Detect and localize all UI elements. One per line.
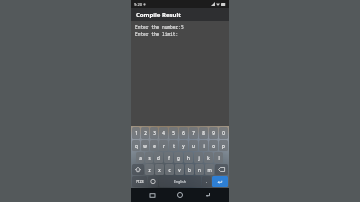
button[interactable]: z: [145, 164, 154, 175]
button[interactable]: k: [204, 152, 213, 163]
staticText: 6: [182, 130, 185, 136]
staticText: 8: [202, 130, 205, 136]
button[interactable]: b: [185, 164, 194, 175]
staticText: y: [182, 143, 185, 149]
button[interactable]: h: [184, 152, 193, 163]
staticText: h: [187, 155, 190, 161]
button[interactable]: 3: [150, 127, 158, 139]
button[interactable]: d: [154, 152, 163, 163]
staticText: x: [158, 167, 161, 173]
staticText: l: [218, 155, 220, 161]
staticText: j: [198, 155, 200, 161]
staticText: 9: [212, 130, 215, 136]
staticText: 7: [192, 130, 195, 136]
button[interactable]: w: [141, 140, 149, 151]
staticText: Compile Result: [136, 11, 181, 19]
staticText: f: [168, 155, 170, 161]
button[interactable]: 0: [219, 127, 228, 139]
staticText: t: [173, 143, 175, 149]
staticText: n: [198, 167, 201, 173]
staticText: b: [188, 167, 191, 173]
staticText: v: [178, 167, 181, 173]
button[interactable]: t: [169, 140, 178, 151]
staticText: Enter the number:5: [135, 24, 184, 30]
button[interactable]: 2: [141, 127, 149, 139]
staticText: m: [207, 167, 212, 173]
staticText: c: [168, 167, 171, 173]
button[interactable]: c: [165, 164, 174, 175]
staticText: u: [192, 143, 195, 149]
staticText: k: [207, 155, 210, 161]
button[interactable]: 1: [132, 127, 140, 139]
button[interactable]: Backspace: [215, 164, 228, 175]
button[interactable]: Emoji: [148, 176, 158, 187]
button[interactable]: 8: [199, 127, 208, 139]
staticText: 9:20: [134, 2, 142, 7]
button[interactable]: ?123: [132, 176, 147, 187]
button[interactable]: 4: [159, 127, 168, 139]
button[interactable]: n: [195, 164, 204, 175]
button[interactable]: 6: [179, 127, 188, 139]
staticText: g: [177, 155, 180, 161]
staticText: w: [143, 143, 147, 149]
staticText: 5: [172, 130, 175, 136]
staticText: 0: [222, 130, 225, 136]
staticText: i: [203, 143, 205, 149]
staticText: Enter the limit:: [135, 31, 179, 37]
staticText: 3: [153, 130, 156, 136]
button[interactable]: a: [136, 152, 144, 163]
button[interactable]: l: [214, 152, 223, 163]
staticText: .: [206, 179, 208, 184]
staticText: a: [139, 155, 142, 161]
button[interactable]: 5: [169, 127, 178, 139]
staticText: p: [222, 143, 225, 149]
button[interactable]: y: [179, 140, 188, 151]
button[interactable]: Back: [201, 188, 215, 202]
button[interactable]: r: [159, 140, 168, 151]
button[interactable]: q: [132, 140, 140, 151]
button[interactable]: Enter: [212, 176, 228, 187]
staticText: o: [212, 143, 215, 149]
button[interactable]: 7: [189, 127, 198, 139]
button[interactable]: g: [174, 152, 183, 163]
button[interactable]: p: [219, 140, 228, 151]
staticText: English: [174, 179, 186, 184]
button[interactable]: v: [175, 164, 184, 175]
button[interactable]: u: [189, 140, 198, 151]
button[interactable]: Recents: [145, 188, 159, 202]
button[interactable]: j: [194, 152, 203, 163]
button[interactable]: o: [209, 140, 218, 151]
staticText: q: [135, 143, 138, 149]
staticText: r: [163, 143, 165, 149]
staticText: ?123: [136, 179, 144, 184]
button[interactable]: s: [145, 152, 153, 163]
staticText: 4: [162, 130, 165, 136]
staticText: e: [153, 143, 156, 149]
staticText: 1: [135, 130, 138, 136]
staticText: s: [148, 155, 151, 161]
button[interactable]: i: [199, 140, 208, 151]
button[interactable]: Period: [202, 176, 211, 187]
button[interactable]: m: [205, 164, 214, 175]
button[interactable]: x: [155, 164, 164, 175]
button[interactable]: f: [164, 152, 173, 163]
staticText: 2: [144, 130, 147, 136]
staticText: z: [148, 167, 151, 173]
button[interactable]: 9: [209, 127, 218, 139]
button[interactable]: Shift: [132, 164, 144, 175]
staticText: d: [157, 155, 160, 161]
button[interactable]: e: [150, 140, 158, 151]
button[interactable]: Home: [173, 188, 187, 202]
button[interactable]: English: [159, 176, 201, 187]
